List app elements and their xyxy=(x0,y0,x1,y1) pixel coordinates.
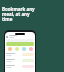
staticText: Bookmark any meal, at any time xyxy=(2,6,36,22)
